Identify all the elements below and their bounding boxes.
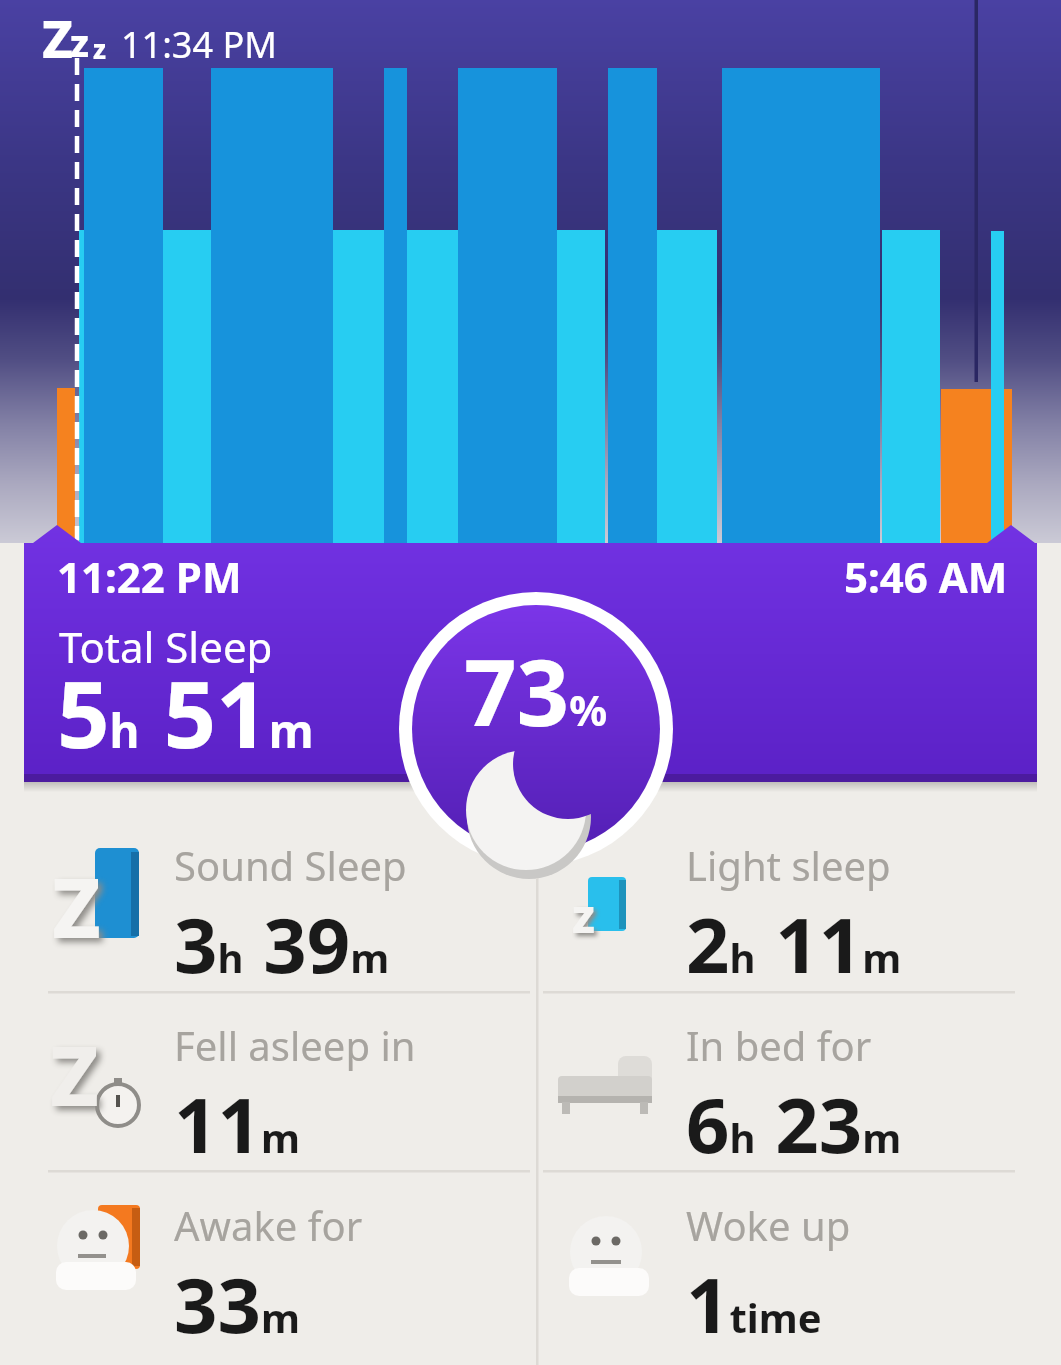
staticText: 5:46 AM [844,548,1008,605]
staticText: Light sleep [686,838,891,892]
staticText: Z [52,850,101,962]
staticText: z [572,884,595,947]
staticText: Fell asleep in [174,1018,416,1072]
button[interactable]: Sound Sleep [174,838,407,996]
staticText: 5h 51m [57,650,314,775]
staticText: Woke up [686,1198,851,1252]
staticText: 33m [174,1252,300,1356]
staticText: In bed for [686,1018,872,1072]
button[interactable]: Fell asleep in [174,1018,416,1176]
staticText: Z [42,2,73,73]
staticText: 1time [686,1252,822,1356]
staticText: 2h 11m [686,892,902,996]
button[interactable]: Woke up [686,1198,851,1356]
staticText: Z [50,1018,99,1130]
staticText: 73% [464,628,608,753]
button[interactable]: Awake for [174,1198,363,1356]
button[interactable]: Light sleep [686,838,902,996]
staticText: Sound Sleep [174,838,407,892]
staticText: 11m [174,1072,300,1176]
staticText: 6h 23m [686,1072,902,1176]
staticText: z [93,31,106,66]
staticText: 11:22 PM [57,548,242,605]
staticText: 11:34 PM [121,20,277,69]
staticText: z [70,16,89,68]
staticText: Awake for [174,1198,363,1252]
staticText: 3h 39m [174,892,390,996]
button[interactable]: In bed for [686,1018,902,1176]
staticText: Total Sleep [59,618,273,675]
